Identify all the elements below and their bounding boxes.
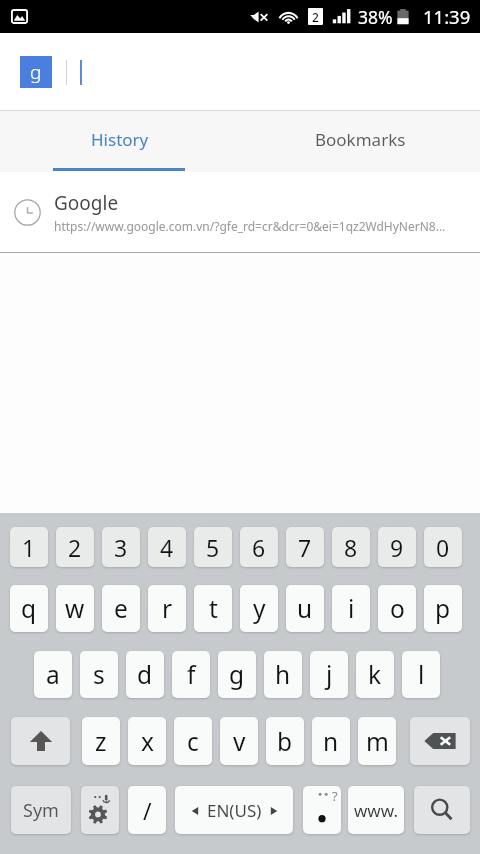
button[interactable]: Backspace bbox=[410, 717, 470, 765]
staticText: a bbox=[46, 658, 60, 691]
button[interactable]: 9 bbox=[378, 527, 416, 567]
button[interactable]: s bbox=[80, 651, 118, 698]
button[interactable]: Google bbox=[0, 172, 480, 252]
staticText: ? bbox=[332, 787, 338, 805]
button[interactable]: 1 bbox=[10, 527, 48, 567]
staticText: EN(US) bbox=[207, 799, 262, 822]
button[interactable]: l bbox=[402, 651, 440, 698]
staticText: https://www.google.com.vn/?gfe_rd=cr&dcr… bbox=[54, 218, 446, 234]
staticText: m bbox=[366, 725, 389, 758]
staticText: History bbox=[91, 128, 149, 151]
button[interactable]: Bookmarks bbox=[240, 111, 480, 172]
staticText: 38% bbox=[358, 5, 393, 29]
staticText: 2 bbox=[68, 532, 82, 563]
button[interactable]: 6 bbox=[240, 527, 278, 567]
button[interactable]: h bbox=[264, 651, 302, 698]
button[interactable]: 3 bbox=[102, 527, 140, 567]
staticText: 0 bbox=[436, 532, 450, 563]
button[interactable]: b bbox=[266, 717, 304, 765]
staticText: k bbox=[368, 658, 382, 691]
staticText: f bbox=[187, 658, 196, 691]
staticText: n bbox=[323, 725, 339, 758]
staticText: g bbox=[30, 59, 42, 85]
staticText: 1 bbox=[22, 532, 36, 563]
button[interactable]: Sym bbox=[11, 786, 71, 834]
staticText: 11:39 bbox=[423, 4, 471, 29]
staticText: t bbox=[209, 592, 218, 625]
staticText: x bbox=[141, 725, 154, 758]
staticText: Sym bbox=[23, 798, 59, 823]
button[interactable]: 5 bbox=[194, 527, 232, 567]
staticText: g bbox=[229, 658, 245, 691]
staticText: j bbox=[326, 658, 333, 691]
staticText: v bbox=[233, 725, 246, 758]
button[interactable]: Site icon bbox=[20, 56, 52, 88]
button[interactable]: History bbox=[0, 111, 240, 172]
button[interactable]: k bbox=[356, 651, 394, 698]
button[interactable]: x bbox=[128, 717, 166, 765]
button[interactable]: t bbox=[194, 585, 232, 632]
button[interactable]: u bbox=[286, 585, 324, 632]
button[interactable]: p bbox=[424, 585, 462, 632]
staticText: b bbox=[277, 725, 293, 758]
button[interactable]: 2 bbox=[56, 527, 94, 567]
staticText: p bbox=[435, 592, 451, 625]
button[interactable]: 0 bbox=[424, 527, 462, 567]
button[interactable]: Space bbox=[175, 786, 293, 834]
staticText: c bbox=[187, 725, 199, 758]
staticText: r bbox=[162, 592, 173, 625]
button[interactable]: Period bbox=[303, 786, 341, 834]
staticText: y bbox=[253, 592, 266, 625]
staticText: i bbox=[348, 592, 355, 625]
staticText: 3 bbox=[114, 532, 128, 563]
staticText: d bbox=[137, 658, 153, 691]
staticText: z bbox=[95, 725, 107, 758]
staticText: 2 bbox=[312, 9, 319, 25]
button[interactable]: www. bbox=[348, 786, 404, 834]
button[interactable]: / bbox=[128, 786, 166, 834]
button[interactable]: r bbox=[148, 585, 186, 632]
staticText: q bbox=[21, 592, 37, 625]
button[interactable]: Shift bbox=[11, 717, 70, 765]
button[interactable]: o bbox=[378, 585, 416, 632]
button[interactable]: m bbox=[358, 717, 396, 765]
button[interactable]: 8 bbox=[332, 527, 370, 567]
button[interactable]: w bbox=[56, 585, 94, 632]
button[interactable]: c bbox=[174, 717, 212, 765]
staticText: 6 bbox=[252, 532, 266, 563]
button[interactable]: g bbox=[218, 651, 256, 698]
button[interactable]: Search bbox=[414, 786, 470, 834]
staticText: w bbox=[65, 592, 85, 625]
button[interactable]: f bbox=[172, 651, 210, 698]
staticText: Bookmarks bbox=[315, 128, 406, 151]
button[interactable]: z bbox=[82, 717, 120, 765]
staticText: 4 bbox=[160, 532, 174, 563]
button[interactable]: q bbox=[10, 585, 48, 632]
staticText: Google bbox=[54, 190, 119, 216]
staticText: 9 bbox=[390, 532, 404, 563]
button[interactable]: 4 bbox=[148, 527, 186, 567]
button[interactable]: y bbox=[240, 585, 278, 632]
staticText: l bbox=[418, 658, 425, 691]
button[interactable]: d bbox=[126, 651, 164, 698]
staticText: www. bbox=[354, 799, 398, 822]
button[interactable]: Settings bbox=[81, 786, 119, 834]
staticText: 8 bbox=[344, 532, 358, 563]
button[interactable]: v bbox=[220, 717, 258, 765]
staticText: o bbox=[390, 592, 405, 625]
staticText: s bbox=[93, 658, 105, 691]
staticText: e bbox=[114, 592, 128, 625]
button[interactable]: i bbox=[332, 585, 370, 632]
button[interactable]: e bbox=[102, 585, 140, 632]
staticText: / bbox=[143, 795, 152, 826]
staticText: 5 bbox=[206, 532, 220, 563]
other: Screenshot bbox=[10, 7, 29, 26]
button[interactable]: a bbox=[34, 651, 72, 698]
staticText: h bbox=[275, 658, 291, 691]
staticText: 7 bbox=[298, 532, 312, 563]
button[interactable]: 7 bbox=[286, 527, 324, 567]
button[interactable]: n bbox=[312, 717, 350, 765]
button[interactable]: j bbox=[310, 651, 348, 698]
staticText: u bbox=[297, 592, 313, 625]
